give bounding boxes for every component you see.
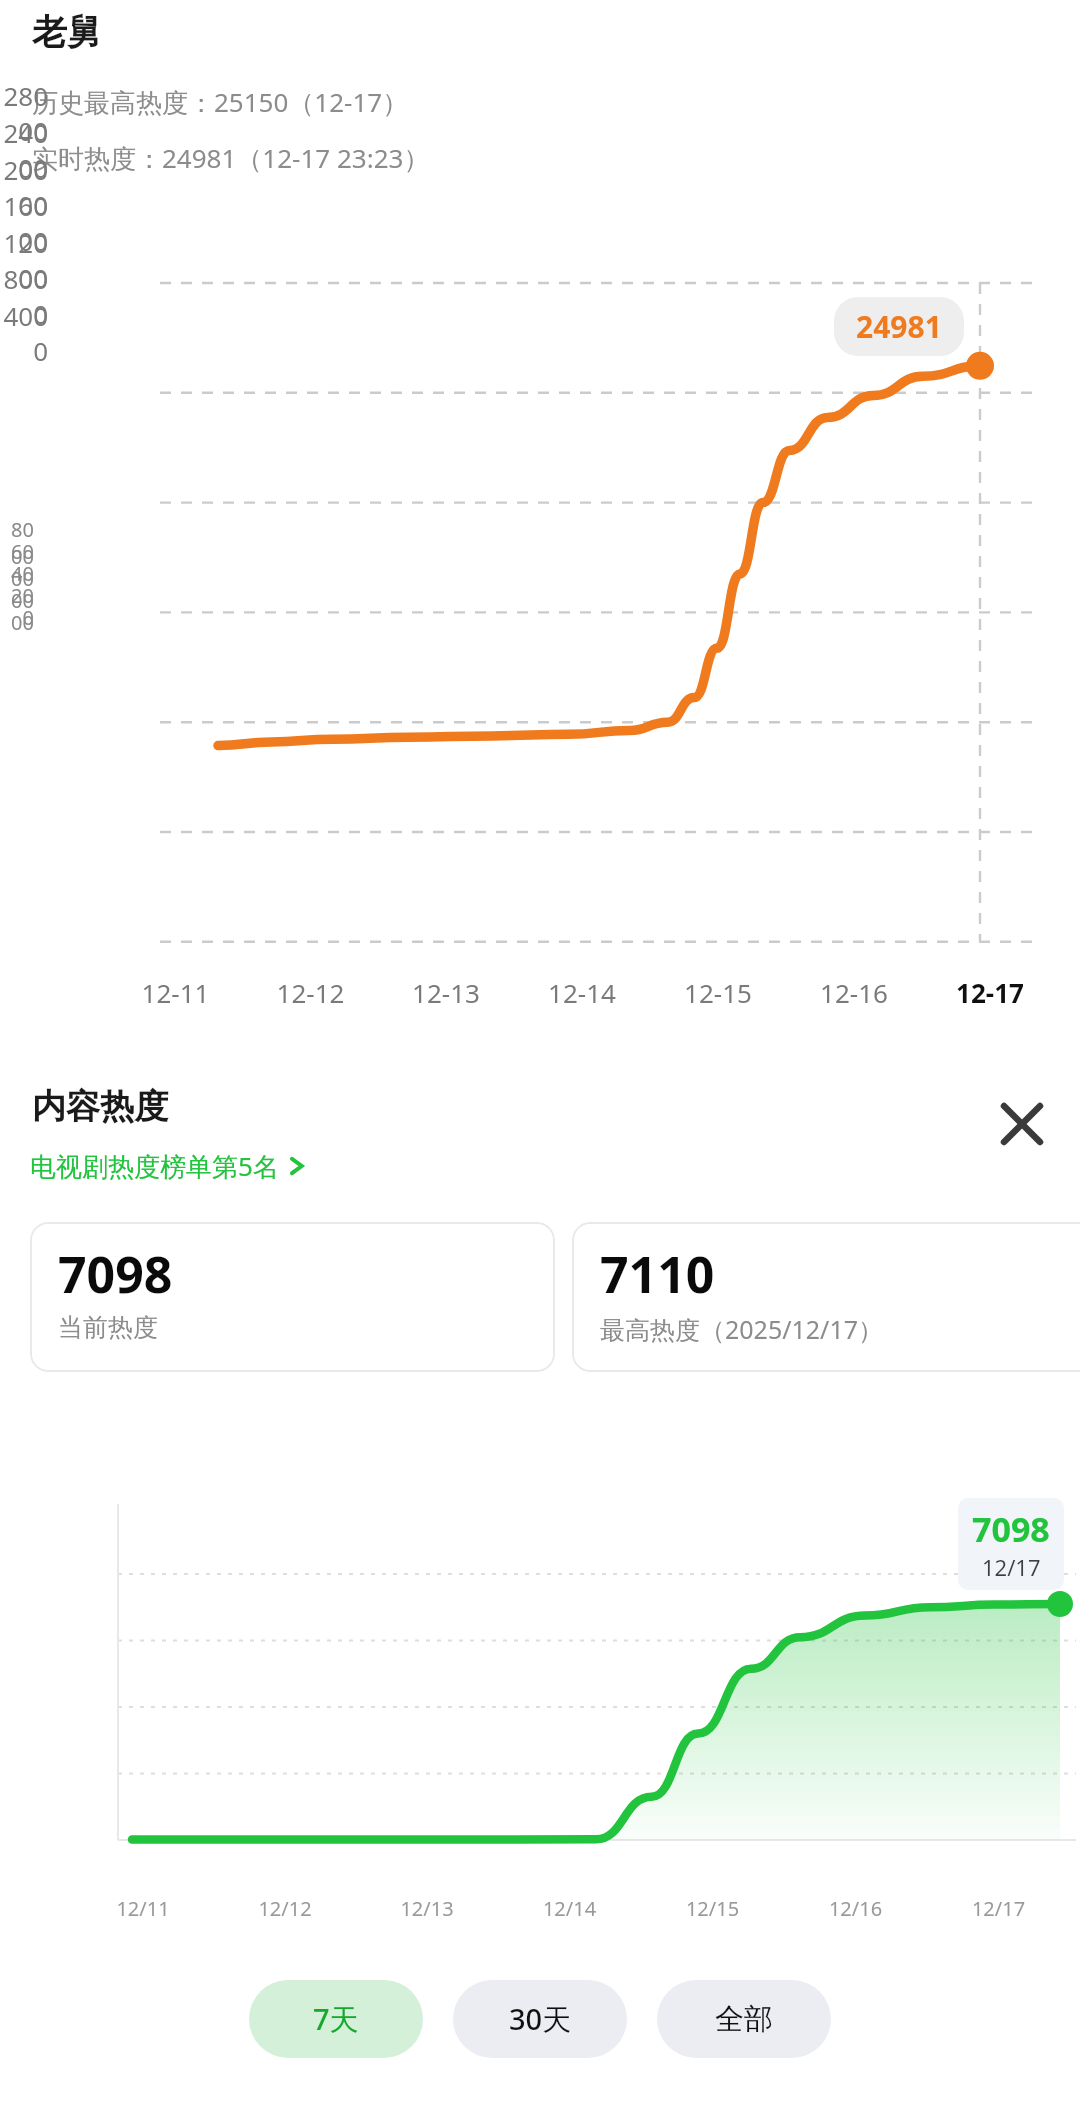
staticText: 7098 bbox=[58, 1240, 173, 1308]
staticText: 最高热度（2025/12/17） bbox=[600, 1312, 884, 1346]
staticText: 内容热度 bbox=[32, 1085, 168, 1128]
button[interactable]: 7098 bbox=[30, 1222, 555, 1372]
staticText: 0 bbox=[0, 604, 34, 631]
staticText: 12/17 bbox=[982, 1552, 1041, 1582]
staticText: 12-14 bbox=[514, 975, 650, 1010]
staticText: 12/15 bbox=[641, 1895, 784, 1922]
button[interactable]: 30天 bbox=[453, 1980, 627, 2058]
staticText: 12/13 bbox=[356, 1895, 498, 1922]
staticText: 7110 bbox=[600, 1240, 715, 1308]
staticText: 12/12 bbox=[214, 1895, 356, 1922]
staticText: 12000 bbox=[0, 225, 48, 295]
staticText: 实时热度：24981（12-17 23:23） bbox=[32, 140, 430, 176]
staticText: 24981 bbox=[856, 306, 942, 347]
staticText: 12-16 bbox=[786, 975, 922, 1010]
staticText: 24000 bbox=[0, 115, 48, 185]
staticText: 当前热度 bbox=[58, 1312, 158, 1343]
staticText: 历史最高热度：25150（12-17） bbox=[32, 84, 409, 120]
staticText: 28000 bbox=[0, 78, 48, 148]
button[interactable]: 7110 bbox=[572, 1222, 1080, 1372]
staticText: 8000 bbox=[0, 261, 48, 331]
button[interactable]: 电视剧热度榜单第5名 bbox=[30, 1148, 304, 1184]
staticText: 4000 bbox=[0, 560, 34, 614]
staticText: 12-17 bbox=[922, 975, 1058, 1010]
staticText: 6000 bbox=[0, 538, 34, 592]
staticText: 12-15 bbox=[650, 975, 786, 1010]
staticText: 12-12 bbox=[243, 975, 378, 1010]
staticText: 7098 bbox=[972, 1506, 1050, 1552]
staticText: 16000 bbox=[0, 188, 48, 258]
staticText: 电视剧热度榜单第5名 bbox=[30, 1148, 279, 1184]
staticText: 12/16 bbox=[784, 1895, 927, 1922]
staticText: 12-13 bbox=[378, 975, 514, 1010]
button[interactable]: 全部 bbox=[657, 1980, 831, 2058]
staticText: 7天 bbox=[313, 1999, 359, 2039]
staticText: 12/17 bbox=[927, 1895, 1070, 1922]
staticText: 2000 bbox=[0, 582, 34, 636]
staticText: 全部 bbox=[715, 2001, 773, 2038]
staticText: 12/11 bbox=[72, 1895, 214, 1922]
button[interactable]: Close bbox=[990, 1092, 1054, 1156]
staticText: 30天 bbox=[509, 1999, 572, 2039]
staticText: 老舅 bbox=[32, 10, 102, 54]
staticText: 4000 bbox=[0, 298, 48, 368]
staticText: 12-11 bbox=[108, 975, 243, 1010]
staticText: 20000 bbox=[0, 152, 48, 222]
staticText: 12/14 bbox=[498, 1895, 641, 1922]
staticText: 8000 bbox=[0, 516, 34, 570]
button[interactable]: 7天 bbox=[249, 1980, 423, 2058]
